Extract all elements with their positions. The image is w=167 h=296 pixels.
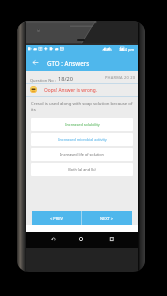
staticText: 80%	[104, 47, 112, 52]
staticText: < PREV	[50, 216, 63, 221]
staticText: Question No :	[30, 78, 56, 83]
staticText: PHARMA 20 20	[105, 75, 136, 80]
button[interactable]: Recent apps	[106, 233, 118, 245]
staticText: Cresol is used along with soap solution …	[31, 100, 136, 112]
staticText: NEXT >	[100, 216, 114, 221]
button[interactable]: Home	[75, 233, 87, 245]
button[interactable]: Increased life of solution	[31, 148, 133, 161]
staticText: GTO : Answers	[47, 59, 90, 67]
staticText: Increased solubility	[65, 122, 100, 127]
button[interactable]: NEXT >	[82, 211, 132, 225]
button[interactable]: Increased solubility	[31, 118, 133, 131]
staticText: 18/20	[58, 75, 73, 83]
button[interactable]: Both (a) and (b)	[31, 163, 133, 176]
staticText: Oops! Answer is wrong.	[44, 87, 98, 94]
button[interactable]: Increased microbial activity	[31, 133, 133, 146]
staticText: Both (a) and (b)	[68, 167, 96, 172]
button[interactable]: Back	[47, 233, 59, 245]
staticText: Increased life of solution	[60, 152, 104, 157]
staticText: 3:54 pm	[119, 47, 135, 52]
button[interactable]: < PREV	[32, 211, 81, 225]
button[interactable]: Back	[26, 53, 44, 71]
staticText: Increased microbial activity	[58, 137, 107, 142]
